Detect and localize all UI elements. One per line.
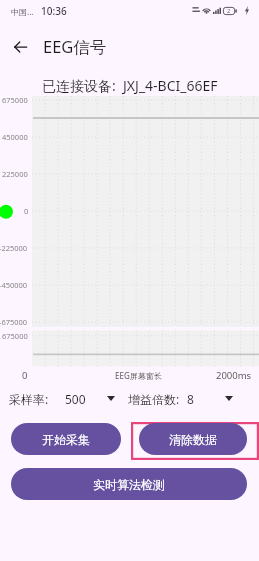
staticText: 开始采集	[42, 432, 90, 447]
button[interactable]: 清除数据	[139, 423, 247, 455]
staticText: 实时算法检测	[93, 477, 165, 492]
staticText: 已连接设备: JXJ_4-BCI_66EF	[42, 76, 218, 94]
staticText: 2000ms	[216, 369, 252, 382]
staticText: 225000	[2, 169, 28, 179]
staticText: 10:36	[41, 4, 67, 18]
staticText: 采样率:	[9, 391, 49, 407]
staticText: 增益倍数:	[128, 391, 180, 407]
staticText: 0	[24, 206, 29, 216]
staticText: -450000	[0, 280, 28, 290]
staticText: 675000	[2, 331, 28, 341]
staticText: -225000	[0, 243, 28, 253]
staticText: 500	[65, 391, 86, 407]
staticText: 450000	[2, 132, 28, 142]
staticText: EEG信号	[43, 35, 107, 57]
staticText: 中国...	[11, 6, 34, 17]
staticText: 2	[227, 7, 231, 15]
button[interactable]: Dropdown	[102, 389, 120, 407]
button[interactable]: Back	[6, 33, 34, 61]
staticText: 0	[22, 369, 28, 382]
button[interactable]: Dropdown	[220, 389, 238, 407]
staticText: -675000	[0, 317, 28, 327]
button[interactable]: 开始采集	[11, 423, 121, 455]
staticText: EEG屏幕窗长	[115, 370, 162, 381]
staticText: 675000	[2, 95, 28, 105]
staticText: 8	[187, 391, 194, 407]
button[interactable]: 实时算法检测	[11, 468, 247, 500]
staticText: 清除数据	[169, 432, 217, 447]
